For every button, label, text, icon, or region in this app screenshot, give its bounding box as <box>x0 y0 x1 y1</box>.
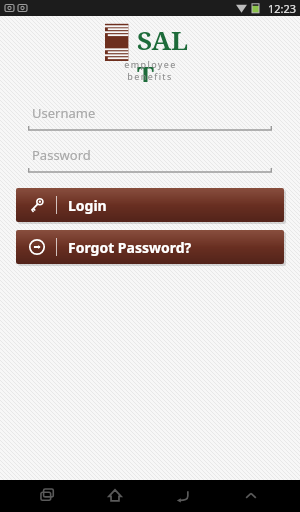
button[interactable]: Show notifications <box>236 481 266 511</box>
staticText: employee <box>124 58 177 70</box>
button[interactable]: Recents <box>33 481 63 511</box>
button[interactable]: Forgot Password? <box>16 230 284 264</box>
staticText: Password <box>32 146 91 164</box>
staticText: 12:23 <box>268 1 297 16</box>
staticText: SALT <box>137 22 195 82</box>
staticText: benefits <box>127 70 173 82</box>
staticText: Login <box>68 196 107 215</box>
staticText: Username <box>32 104 96 122</box>
button[interactable]: Username <box>28 100 272 132</box>
button[interactable]: Back <box>168 481 198 511</box>
button[interactable]: Login <box>16 188 284 222</box>
button[interactable]: Home <box>100 481 130 511</box>
staticText: Forgot Password? <box>68 238 192 257</box>
button[interactable]: Password <box>28 142 272 174</box>
